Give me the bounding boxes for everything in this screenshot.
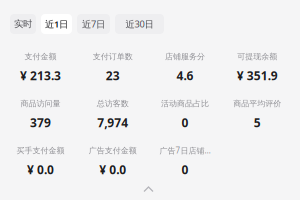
button[interactable]: 近30日 xyxy=(115,14,164,34)
staticText: 23 xyxy=(106,67,120,83)
staticText: 支付订单数 xyxy=(93,52,133,61)
staticText: ¥ 0.0 xyxy=(99,161,126,177)
staticText: 商品访问量 xyxy=(20,99,60,108)
staticText: 商品平均评价 xyxy=(233,99,281,108)
staticText: 379 xyxy=(30,114,51,130)
staticText: 可提现余额 xyxy=(237,52,277,61)
staticText: 0 xyxy=(181,114,188,130)
staticText: 近30日 xyxy=(125,18,153,30)
staticText: 7,974 xyxy=(97,114,128,130)
staticText: 总访客数 xyxy=(97,99,129,108)
staticText: 店铺服务分 xyxy=(165,52,205,61)
staticText: 活动商品占比 xyxy=(161,99,209,108)
staticText: 4.6 xyxy=(176,67,193,83)
staticText: 0 xyxy=(181,161,188,177)
staticText: 实时 xyxy=(14,18,32,30)
staticText: 买手支付金额 xyxy=(16,146,64,155)
staticText: 广告7日店铺… xyxy=(159,145,210,156)
staticText: 5 xyxy=(254,114,261,130)
button[interactable]: 近7日 xyxy=(77,14,110,34)
staticText: 广告支付金额 xyxy=(89,146,137,155)
staticText: 近7日 xyxy=(82,18,105,30)
button[interactable]: 近1日 xyxy=(41,14,72,34)
button[interactable]: Collapse xyxy=(141,184,156,195)
staticText: 近1日 xyxy=(45,18,68,30)
button[interactable]: 实时 xyxy=(10,14,36,34)
staticText: 支付金额 xyxy=(24,52,56,61)
staticText: ¥ 351.9 xyxy=(237,67,278,83)
staticText: ¥ 213.3 xyxy=(20,67,61,83)
staticText: ¥ 0.0 xyxy=(27,161,54,177)
